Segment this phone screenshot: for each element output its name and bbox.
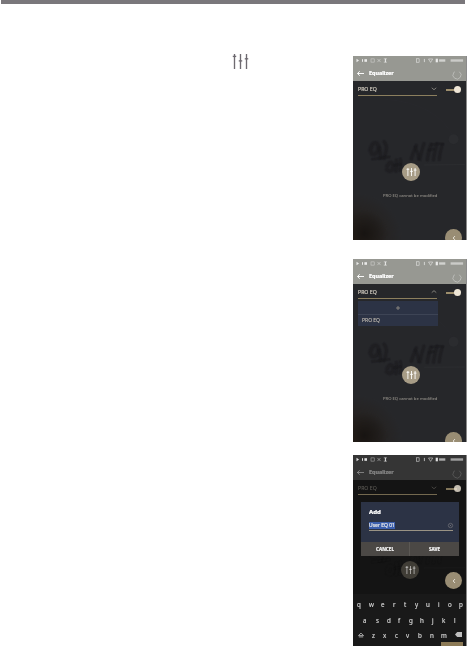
staticText: CANCEL — [376, 546, 394, 552]
staticText: PRO EQ — [358, 288, 377, 295]
button[interactable]: a — [359, 612, 371, 627]
button[interactable]: y — [411, 596, 422, 611]
button[interactable]: s — [371, 612, 383, 627]
staticText: PRO EQ — [358, 484, 377, 491]
button[interactable]: Back — [354, 466, 367, 479]
button[interactable]: z — [368, 627, 379, 642]
staticText: Equalizer — [369, 272, 394, 279]
staticText: g — [409, 616, 413, 624]
staticText: m — [441, 631, 447, 639]
staticText: f — [398, 616, 401, 624]
staticText: u — [426, 600, 430, 608]
button[interactable]: CANCEL — [361, 542, 409, 556]
button[interactable]: Backspace — [450, 627, 466, 642]
staticText: h — [420, 616, 424, 624]
button[interactable]: g — [405, 612, 416, 627]
staticText: p — [459, 600, 463, 608]
staticText: a — [363, 616, 367, 624]
button[interactable]: r — [389, 596, 400, 611]
staticText: z — [372, 631, 375, 639]
button[interactable]: Reset — [450, 271, 463, 284]
staticText: o — [448, 600, 452, 608]
staticText: Equalizer — [369, 468, 394, 475]
button[interactable]: c — [390, 627, 402, 642]
button[interactable]: u — [422, 596, 433, 611]
button[interactable]: f — [394, 612, 405, 627]
staticText: PRO EQ cannot be modified — [383, 193, 438, 199]
button[interactable]: Back — [445, 572, 462, 589]
staticText: Add — [369, 508, 381, 516]
button[interactable]: Equalizer on — [446, 484, 466, 493]
button[interactable]: Back — [445, 229, 462, 240]
staticText: j — [432, 616, 434, 624]
staticText: s — [376, 616, 379, 624]
button[interactable]: Equalizer on — [446, 288, 466, 297]
button[interactable]: Shift — [353, 627, 368, 642]
staticText: t — [404, 600, 407, 608]
button[interactable]: j — [427, 612, 438, 627]
staticText: SAVE — [429, 546, 441, 552]
staticText: PRO EQ — [362, 317, 381, 324]
staticText: b — [418, 631, 422, 639]
staticText: User EQ 01 — [369, 522, 395, 529]
button[interactable]: i — [433, 596, 444, 611]
staticText: c — [395, 631, 398, 639]
staticText: r — [393, 600, 396, 608]
button[interactable]: l — [449, 612, 460, 627]
button[interactable]: Reset — [450, 467, 463, 480]
button[interactable]: Back — [354, 270, 367, 283]
button[interactable]: v — [402, 627, 414, 642]
button[interactable]: Equalizer — [402, 366, 420, 384]
button[interactable]: t — [400, 596, 411, 611]
button[interactable]: w — [365, 596, 377, 611]
button[interactable]: Equalizer — [402, 163, 420, 181]
button[interactable]: Back — [445, 432, 462, 442]
button[interactable]: Reset — [450, 68, 463, 81]
staticText: v — [406, 631, 410, 639]
staticText: l — [454, 616, 456, 624]
staticText: y — [415, 600, 419, 608]
staticText: d — [387, 616, 391, 624]
staticText: n — [430, 631, 434, 639]
button[interactable]: h — [416, 612, 427, 627]
button[interactable]: SAVE — [410, 542, 459, 556]
button[interactable]: e — [377, 596, 389, 611]
staticText: e — [381, 600, 385, 608]
staticText: i — [438, 600, 440, 608]
button[interactable]: PRO EQ — [358, 315, 438, 326]
button[interactable]: Equalizer — [401, 561, 419, 579]
button[interactable]: Back — [354, 67, 367, 80]
button[interactable]: b — [414, 627, 426, 642]
button[interactable]: o — [444, 596, 455, 611]
staticText: k — [442, 616, 446, 624]
button[interactable]: Add preset — [358, 301, 438, 314]
staticText: q — [357, 600, 361, 608]
button[interactable]: d — [383, 612, 394, 627]
staticText: Equalizer — [369, 69, 394, 76]
staticText: x — [383, 631, 387, 639]
staticText: w — [369, 600, 374, 608]
button[interactable]: n — [426, 627, 438, 642]
button[interactable]: k — [438, 612, 449, 627]
button[interactable]: x — [379, 627, 390, 642]
staticText: PRO EQ — [358, 85, 377, 92]
button[interactable]: m — [438, 627, 450, 642]
button[interactable]: q — [353, 596, 365, 611]
staticText: PRO EQ cannot be modified — [383, 396, 438, 402]
button[interactable]: Equalizer on — [446, 85, 466, 94]
button[interactable]: p — [455, 596, 466, 611]
